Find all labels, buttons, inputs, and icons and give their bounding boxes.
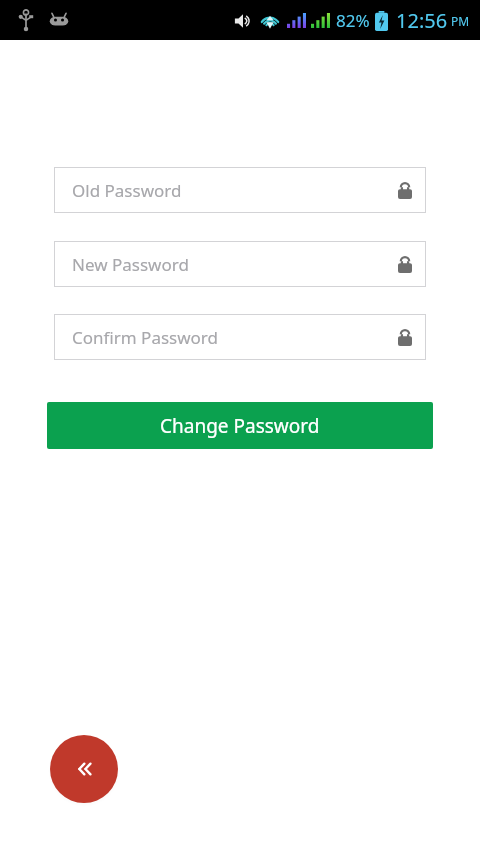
staticText: 82% bbox=[336, 9, 370, 32]
staticText: 12:56 bbox=[396, 7, 448, 34]
button[interactable]: Back bbox=[50, 735, 118, 803]
staticText: PM bbox=[451, 13, 470, 29]
button[interactable]: New Password bbox=[54, 241, 426, 287]
button[interactable]: Confirm Password bbox=[54, 314, 426, 360]
button[interactable]: Old Password bbox=[54, 167, 426, 213]
staticText: New Password bbox=[72, 253, 189, 276]
button[interactable]: Change Password bbox=[47, 402, 433, 449]
staticText: Confirm Password bbox=[72, 326, 218, 349]
staticText: Change Password bbox=[160, 413, 320, 439]
staticText: Old Password bbox=[72, 179, 182, 202]
